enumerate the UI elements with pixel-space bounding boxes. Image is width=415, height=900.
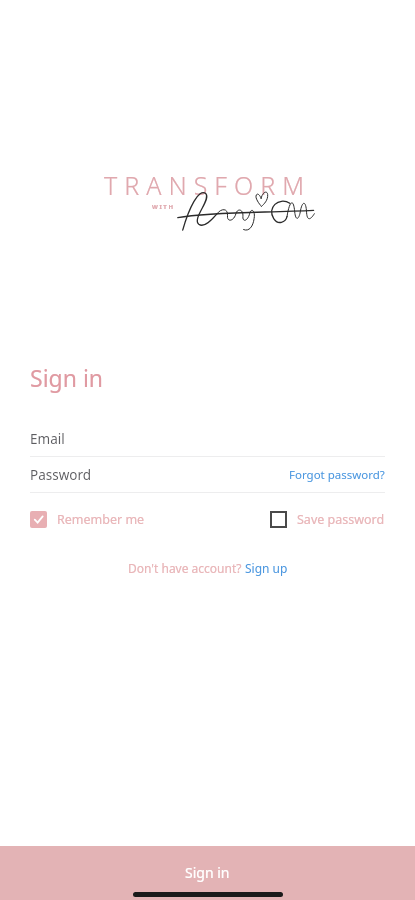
staticText: Sign in — [30, 362, 104, 393]
staticText: WITH — [152, 203, 175, 211]
staticText: Don't have account? — [128, 560, 245, 576]
staticText: TRANSFORM — [104, 168, 311, 202]
staticText: Password — [30, 466, 92, 484]
button[interactable]: Don't have account? — [0, 560, 415, 576]
button[interactable]: Remember me — [30, 511, 270, 528]
button[interactable]: Save password — [270, 511, 385, 528]
staticText: Forgot password? — [289, 467, 385, 483]
staticText: Sign up — [245, 560, 288, 576]
staticText: Save password — [297, 511, 385, 528]
button[interactable]: Sign in — [0, 846, 415, 900]
button[interactable]: Email — [0, 421, 415, 456]
staticText: Email — [30, 430, 65, 448]
button[interactable]: Password — [30, 466, 289, 484]
staticText: Sign in — [185, 863, 230, 882]
button[interactable]: Forgot password? — [289, 467, 385, 483]
staticText: Remember me — [57, 511, 145, 528]
